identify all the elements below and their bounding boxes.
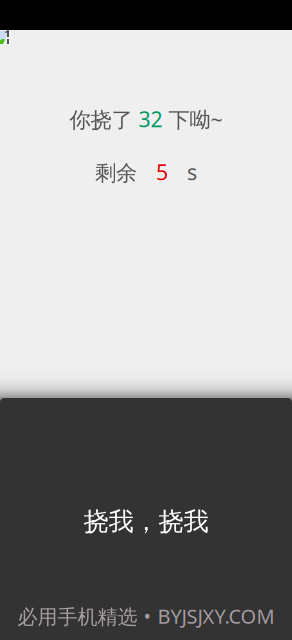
staticText: 32 (138, 105, 162, 133)
staticText: 你挠了 (69, 107, 138, 133)
staticText: 5 (156, 158, 168, 186)
staticText: 剩余 (95, 160, 137, 186)
staticText: s (187, 158, 197, 186)
button[interactable]: 挠我，挠我 (0, 398, 292, 640)
staticText: 挠我，挠我 (83, 506, 208, 537)
staticText: • (143, 603, 151, 629)
staticText: 必用手机精选 (17, 605, 137, 629)
staticText: BYJSJXY.COM (157, 603, 274, 629)
staticText: 下呦~ (162, 105, 222, 133)
